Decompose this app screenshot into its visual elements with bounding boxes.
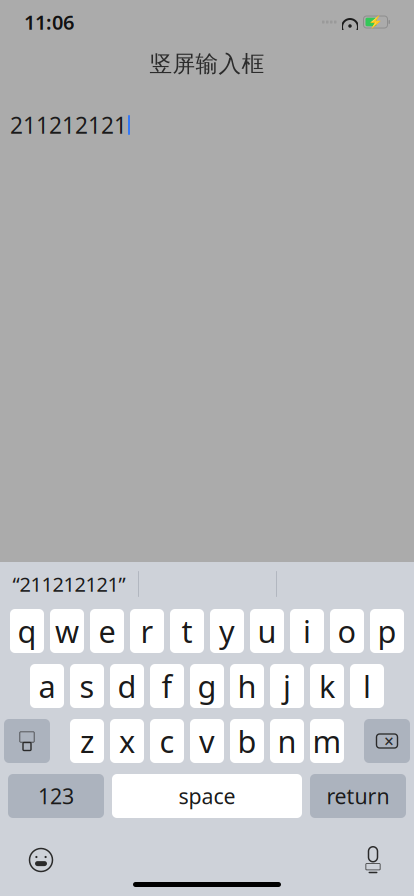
button[interactable]: d [110,664,144,708]
staticText: q [17,611,36,651]
staticText: f [161,666,172,706]
staticText: b [237,721,256,761]
staticText: e [98,611,115,651]
button[interactable]: u [250,609,284,653]
staticText: 11:06 [24,9,74,35]
staticText: o [337,611,356,651]
button[interactable]: return [310,774,406,818]
button[interactable]: g [190,664,224,708]
button[interactable]: n [270,719,304,763]
staticText: × [384,729,394,752]
staticText: l [363,666,371,706]
staticText: 211212121 [10,110,127,140]
button[interactable]: i [290,609,324,653]
staticText: p [377,611,396,651]
staticText: 竖屏输入框 [149,50,264,78]
staticText: i [303,611,311,651]
button[interactable]: c [150,719,184,763]
button[interactable]: e [90,609,124,653]
button[interactable]: y [210,609,244,653]
button[interactable]: 123 [8,774,104,818]
staticText: d [117,666,136,706]
button[interactable]: x [110,719,144,763]
staticText: v [199,721,215,761]
staticText: s [79,666,94,706]
button[interactable]: w [50,609,84,653]
button[interactable]: v [190,719,224,763]
button[interactable]: space [112,774,302,818]
staticText: h [237,666,256,706]
button[interactable]: l [350,664,384,708]
button[interactable]: h [230,664,264,708]
staticText: t [181,611,192,651]
staticText: 123 [38,782,74,810]
button[interactable]: Shift [4,719,50,763]
staticText: space [178,782,235,810]
button[interactable]: s [70,664,104,708]
button[interactable]: Dictation [351,838,395,882]
staticText: y [219,611,235,651]
staticText: w [55,611,79,651]
staticText: r [140,611,153,651]
button[interactable]: m [310,719,344,763]
button[interactable]: Delete [364,719,410,763]
staticText: a [38,666,55,706]
staticText: c [159,721,174,761]
staticText: x [119,721,135,761]
button[interactable]: z [70,719,104,763]
button[interactable]: k [310,664,344,708]
button[interactable]: “211212121” [0,565,138,603]
staticText: g [197,666,216,706]
button[interactable]: Emoji [19,838,63,882]
button[interactable]: j [270,664,304,708]
button[interactable]: p [370,609,404,653]
button[interactable]: f [150,664,184,708]
staticText: return [326,782,389,810]
staticText: “211212121” [12,571,125,597]
button[interactable]: t [170,609,204,653]
staticText: ⚡ [368,15,383,29]
button[interactable]: r [130,609,164,653]
staticText: z [80,721,94,761]
staticText: u [257,611,276,651]
button[interactable]: o [330,609,364,653]
button[interactable]: q [10,609,44,653]
button[interactable]: b [230,719,264,763]
staticText: j [283,666,291,706]
staticText: k [319,666,335,706]
staticText: m [312,721,341,761]
button[interactable]: a [30,664,64,708]
staticText: n [277,721,296,761]
